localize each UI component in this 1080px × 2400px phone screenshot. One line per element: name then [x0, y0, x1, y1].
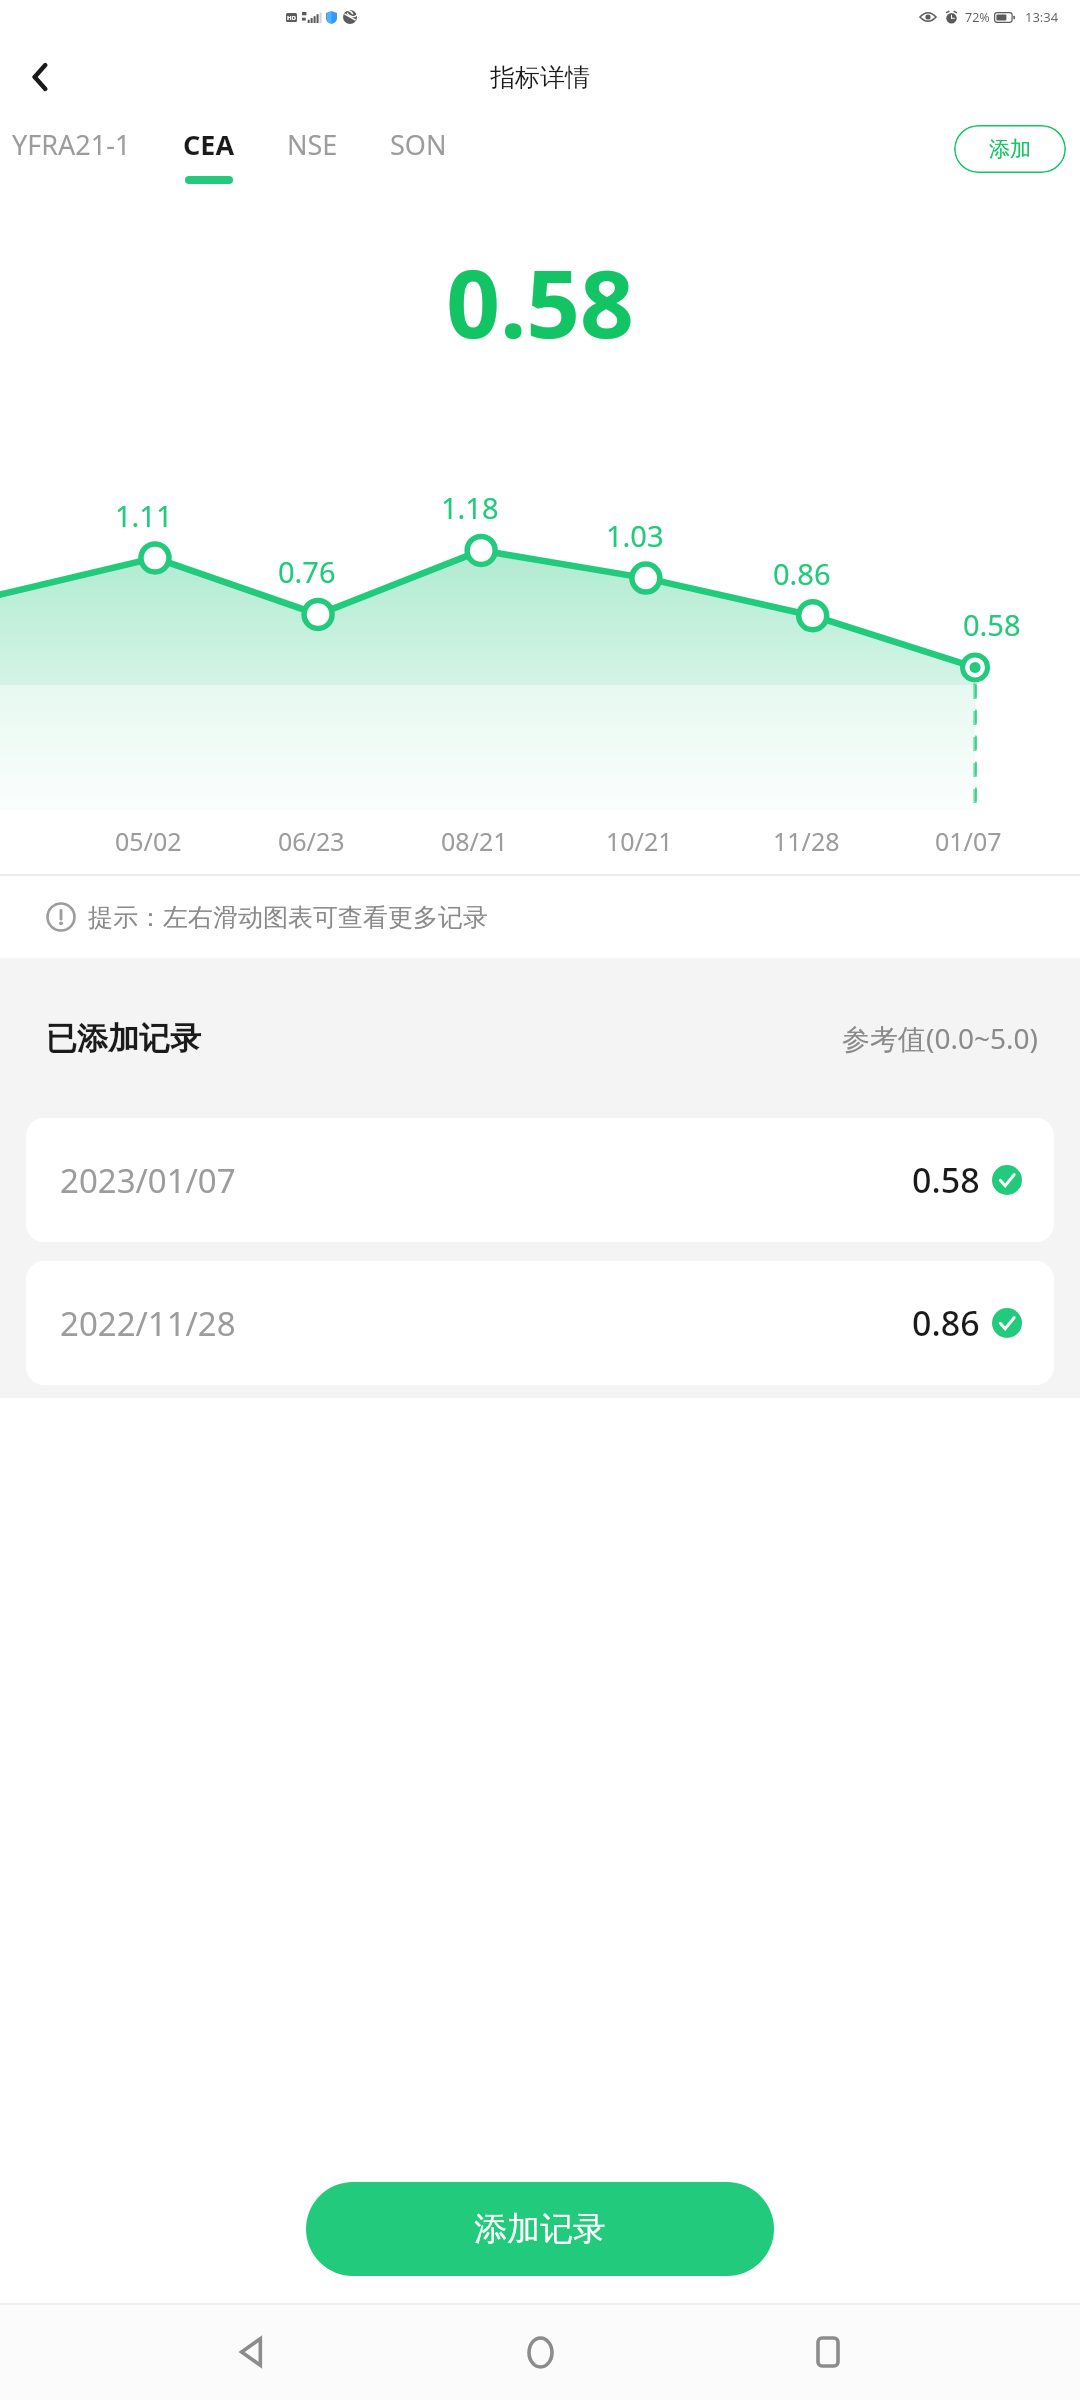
- staticText: 0.76: [278, 552, 336, 591]
- staticText: SON: [390, 126, 447, 163]
- staticText: 72%: [965, 9, 990, 26]
- staticText: HD: [287, 14, 296, 22]
- button[interactable]: SON: [390, 126, 447, 176]
- staticText: 0.86: [912, 1300, 980, 1346]
- staticText: 01/07: [935, 824, 1002, 858]
- button[interactable]: Back: [12, 49, 68, 105]
- button[interactable]: 2023/01/07: [26, 1118, 1054, 1242]
- button[interactable]: 添加: [954, 125, 1066, 173]
- staticText: 08/21: [441, 824, 508, 858]
- staticText: 0.58: [446, 238, 634, 366]
- button[interactable]: Recent apps: [792, 2316, 864, 2388]
- button[interactable]: 2022/11/28: [26, 1261, 1054, 1385]
- staticText: 0.58: [963, 605, 1021, 644]
- staticText: 11/28: [773, 824, 840, 858]
- staticText: 06/23: [278, 824, 345, 858]
- staticText: 13:34: [1025, 8, 1059, 26]
- staticText: 0.58: [912, 1157, 980, 1203]
- staticText: 10/21: [606, 824, 673, 858]
- staticText: 添加记录: [474, 2208, 606, 2250]
- staticText: 1.03: [606, 516, 664, 555]
- button[interactable]: 添加记录: [306, 2182, 774, 2276]
- staticText: 已添加记录: [46, 1019, 201, 1058]
- button[interactable]: CEA: [183, 126, 235, 184]
- staticText: NSE: [287, 126, 338, 163]
- staticText: YFRA21-1: [12, 126, 131, 163]
- staticText: 参考值(0.0~5.0): [842, 1019, 1038, 1057]
- staticText: 1.18: [441, 488, 499, 527]
- staticText: 提示：左右滑动图表可查看更多记录: [88, 902, 488, 933]
- staticText: 2022/11/28: [60, 1301, 236, 1346]
- staticText: CEA: [183, 126, 235, 163]
- staticText: 1.11: [115, 496, 173, 535]
- staticText: 2023/01/07: [60, 1158, 236, 1203]
- button[interactable]: YFRA21-1: [12, 126, 131, 176]
- button[interactable]: Home: [504, 2316, 576, 2388]
- staticText: 添加: [989, 136, 1031, 162]
- button[interactable]: NSE: [287, 126, 338, 176]
- staticText: 0.86: [773, 554, 831, 593]
- staticText: 05/02: [115, 824, 182, 858]
- button[interactable]: Back: [216, 2316, 288, 2388]
- staticText: 指标详情: [490, 62, 590, 93]
